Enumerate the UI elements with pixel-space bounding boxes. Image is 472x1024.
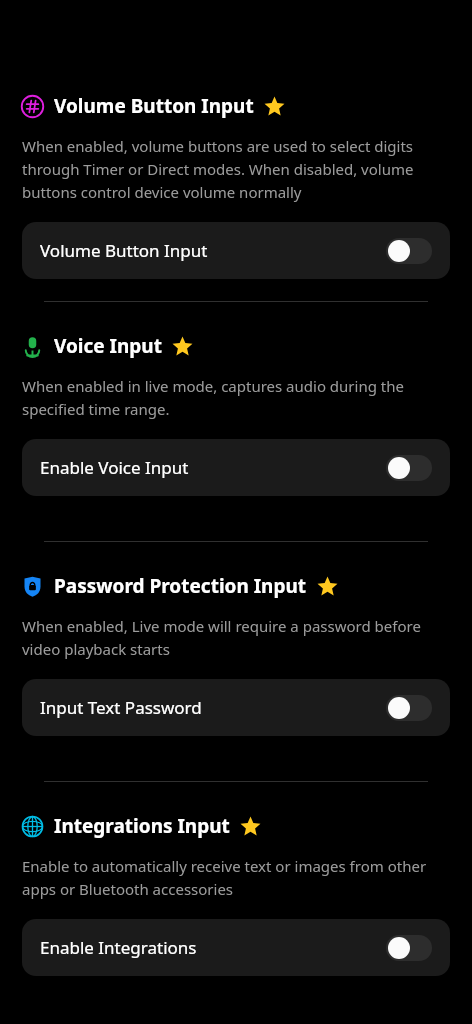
staticText: Volume Button Input xyxy=(54,93,254,119)
staticText: Password Protection Input xyxy=(54,573,307,599)
staticText: When enabled in live mode, captures audi… xyxy=(22,376,452,419)
staticText: Enable Integrations xyxy=(40,936,386,959)
button[interactable]: Toggle Volume Button Input xyxy=(386,238,432,264)
staticText: Enable to automatically receive text or … xyxy=(22,856,452,899)
button[interactable]: Input Text Password xyxy=(22,679,450,736)
button[interactable]: Toggle Input Text Password xyxy=(386,695,432,721)
staticText: Integrations Input xyxy=(54,813,230,839)
staticText: When enabled, Live mode will require a p… xyxy=(22,616,452,659)
staticText: When enabled, volume buttons are used to… xyxy=(22,136,452,202)
button[interactable]: Enable Integrations xyxy=(22,919,450,976)
button[interactable]: Volume Button Input xyxy=(22,222,450,279)
button[interactable]: Enable Voice Input xyxy=(22,439,450,496)
staticText: Input Text Password xyxy=(40,696,386,719)
staticText: Voice Input xyxy=(54,333,162,359)
button[interactable]: Toggle Enable Integrations xyxy=(386,935,432,961)
staticText: Volume Button Input xyxy=(40,239,386,262)
staticText: Enable Voice Input xyxy=(40,456,386,479)
button[interactable]: Toggle Enable Voice Input xyxy=(386,455,432,481)
